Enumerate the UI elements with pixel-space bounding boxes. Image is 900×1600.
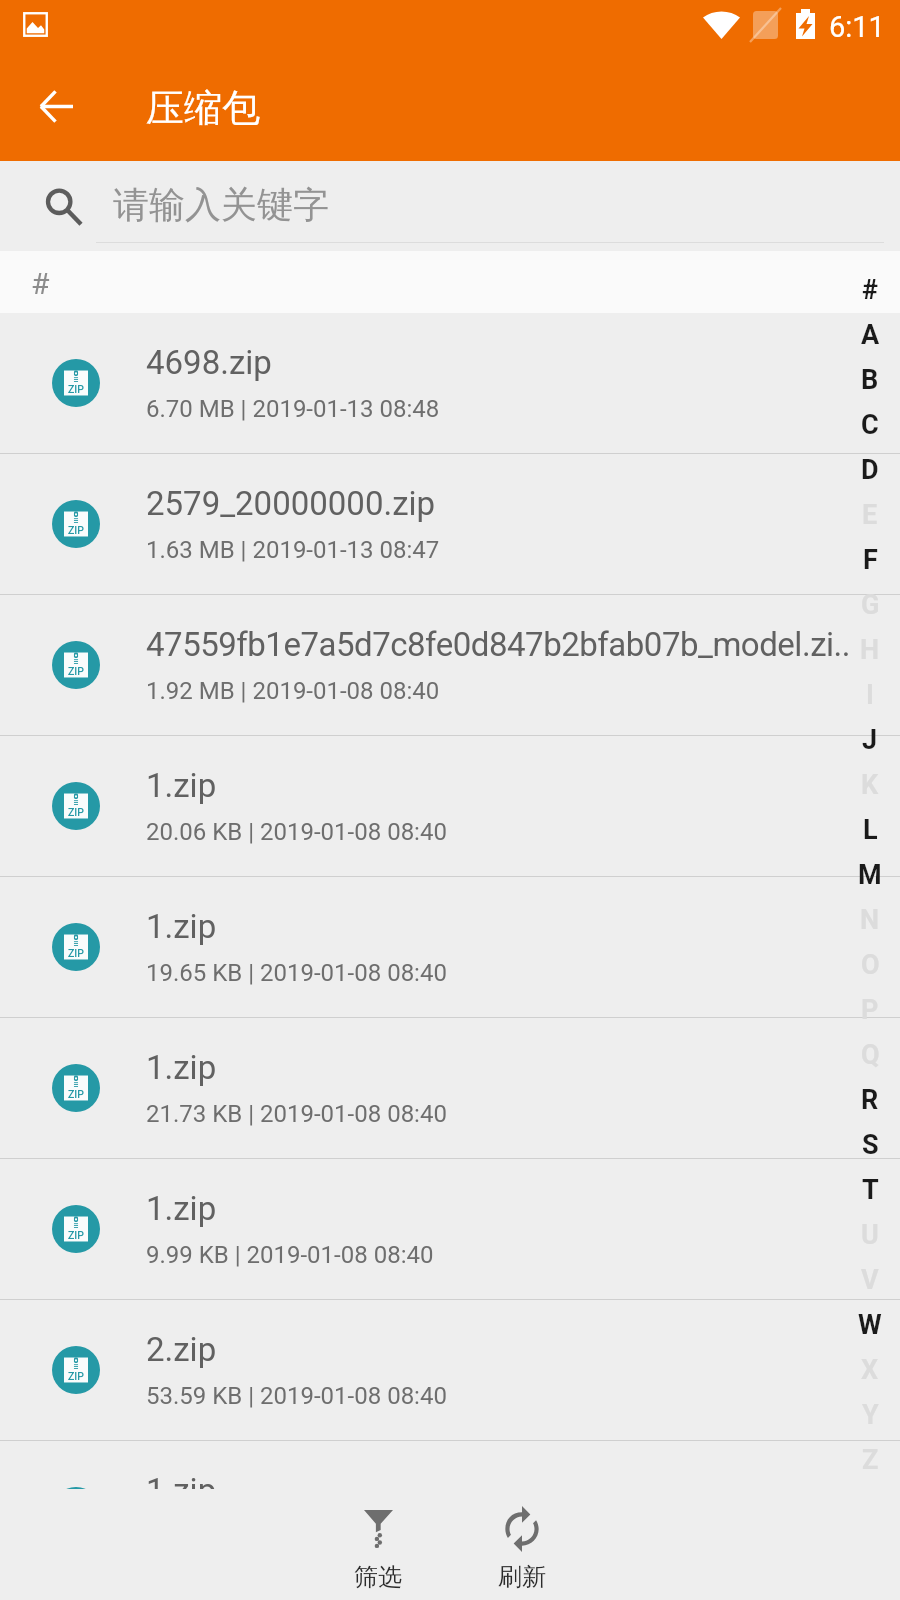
staticText: 请输入关键字: [113, 182, 329, 227]
button[interactable]: X: [840, 1347, 900, 1392]
staticText: 筛选: [354, 1562, 402, 1592]
staticText: S: [862, 1129, 879, 1161]
button[interactable]: Y: [840, 1392, 900, 1437]
staticText: 20.06 KB | 2019-01-08 08:40: [146, 818, 447, 846]
button[interactable]: ZIP: [0, 1441, 900, 1489]
button[interactable]: O: [840, 942, 900, 987]
staticText: J: [862, 724, 878, 756]
staticText: Z: [862, 1444, 879, 1476]
staticText: 1.92 MB | 2019-01-08 08:40: [146, 677, 440, 705]
staticText: X: [861, 1354, 879, 1386]
staticText: M: [858, 859, 882, 891]
button[interactable]: F: [840, 537, 900, 582]
staticText: 1.63 MB | 2019-01-13 08:47: [146, 536, 440, 564]
staticText: O: [861, 949, 880, 981]
button[interactable]: Z: [840, 1437, 900, 1482]
staticText: 2.zip: [146, 1330, 217, 1369]
button[interactable]: ZIP: [0, 454, 900, 595]
staticText: D: [861, 454, 879, 486]
button[interactable]: #: [840, 267, 900, 312]
staticText: ZIP: [68, 1370, 85, 1382]
button[interactable]: I: [840, 672, 900, 717]
staticText: ZIP: [68, 665, 85, 677]
staticText: 刷新: [498, 1562, 546, 1592]
staticText: P: [861, 994, 879, 1026]
staticText: 1.zip: [146, 1189, 217, 1228]
button[interactable]: 刷新: [450, 1489, 594, 1600]
staticText: U: [861, 1219, 879, 1251]
button[interactable]: N: [840, 897, 900, 942]
button[interactable]: ZIP: [0, 595, 900, 736]
button[interactable]: ZIP: [0, 736, 900, 877]
button[interactable]: ZIP: [0, 1018, 900, 1159]
button[interactable]: T: [840, 1167, 900, 1212]
staticText: 压缩包: [146, 84, 260, 132]
button[interactable]: ZIP: [0, 877, 900, 1018]
staticText: T: [862, 1174, 879, 1206]
staticText: Y: [862, 1399, 879, 1431]
button[interactable]: E: [840, 492, 900, 537]
staticText: 9.99 KB | 2019-01-08 08:40: [146, 1241, 434, 1269]
button[interactable]: W: [840, 1302, 900, 1347]
button[interactable]: J: [840, 717, 900, 762]
button[interactable]: ZIP: [0, 313, 900, 454]
staticText: K: [861, 769, 879, 801]
button[interactable]: Q: [840, 1032, 900, 1077]
button[interactable]: U: [840, 1212, 900, 1257]
staticText: W: [858, 1309, 882, 1341]
staticText: 1.zip: [146, 1471, 217, 1489]
staticText: 19.65 KB | 2019-01-08 08:40: [146, 959, 447, 987]
staticText: 1.zip: [146, 907, 217, 946]
button[interactable]: S: [840, 1122, 900, 1167]
button[interactable]: R: [840, 1077, 900, 1122]
staticText: 1.zip: [146, 1048, 217, 1087]
staticText: N: [860, 904, 880, 936]
staticText: I: [866, 679, 874, 711]
staticText: L: [863, 814, 878, 846]
button[interactable]: A: [840, 312, 900, 357]
staticText: #: [862, 274, 878, 306]
button[interactable]: K: [840, 762, 900, 807]
button[interactable]: P: [840, 987, 900, 1032]
staticText: G: [861, 589, 880, 621]
staticText: R: [861, 1084, 879, 1116]
button[interactable]: ZIP: [0, 1300, 900, 1441]
staticText: ZIP: [68, 1229, 85, 1241]
staticText: ZIP: [68, 524, 85, 536]
staticText: ZIP: [68, 1088, 85, 1100]
staticText: Q: [861, 1039, 880, 1071]
staticText: 6:11: [829, 10, 885, 44]
button[interactable]: Back: [12, 62, 100, 150]
staticText: 1.zip: [146, 766, 217, 805]
button[interactable]: D: [840, 447, 900, 492]
staticText: A: [861, 319, 880, 351]
staticText: 6.70 MB | 2019-01-13 08:48: [146, 395, 440, 423]
staticText: 21.73 KB | 2019-01-08 08:40: [146, 1100, 447, 1128]
staticText: 47559fb1e7a5d7c8fe0d847b2bfab07b_model.z…: [146, 625, 851, 664]
staticText: #: [31, 266, 50, 301]
button[interactable]: 请输入关键字: [0, 161, 900, 251]
staticText: 2579_20000000.zip: [146, 484, 436, 523]
staticText: F: [863, 544, 878, 576]
button[interactable]: ZIP: [0, 1159, 900, 1300]
staticText: 53.59 KB | 2019-01-08 08:40: [146, 1382, 447, 1410]
button[interactable]: G: [840, 582, 900, 627]
staticText: ZIP: [68, 947, 85, 959]
staticText: 4698.zip: [146, 343, 272, 382]
button[interactable]: C: [840, 402, 900, 447]
staticText: ZIP: [68, 806, 85, 818]
staticText: C: [861, 409, 879, 441]
button[interactable]: M: [840, 852, 900, 897]
staticText: B: [861, 364, 879, 396]
button[interactable]: L: [840, 807, 900, 852]
button[interactable]: B: [840, 357, 900, 402]
button[interactable]: V: [840, 1257, 900, 1302]
staticText: H: [860, 634, 880, 666]
button[interactable]: H: [840, 627, 900, 672]
staticText: E: [862, 499, 878, 531]
staticText: V: [861, 1264, 879, 1296]
staticText: ZIP: [68, 383, 85, 395]
button[interactable]: 筛选: [306, 1489, 450, 1600]
